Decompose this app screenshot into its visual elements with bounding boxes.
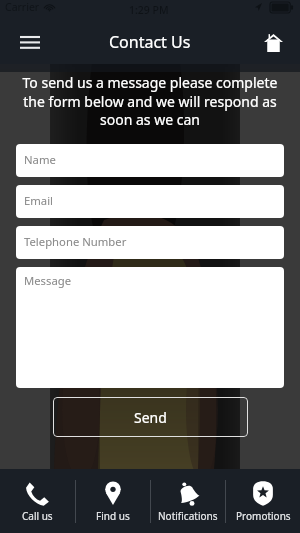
staticText: To send us a message please complete the…: [4, 73, 296, 129]
staticText: Email: [24, 193, 54, 208]
button[interactable]: Call us: [0, 469, 75, 533]
button[interactable]: Telephone Number: [16, 226, 284, 259]
staticText: Carrier: [5, 0, 40, 14]
button[interactable]: Home: [256, 25, 290, 59]
staticText: Promotions: [236, 509, 291, 523]
button[interactable]: Promotions: [226, 469, 300, 533]
button[interactable]: Find us: [76, 469, 150, 533]
button[interactable]: Email: [16, 185, 284, 218]
button[interactable]: Notifications: [151, 469, 225, 533]
staticText: Contact Us: [109, 31, 191, 53]
button[interactable]: Message: [16, 267, 284, 388]
staticText: Name: [24, 152, 56, 167]
staticText: Call us: [22, 509, 53, 523]
staticText: Telephone Number: [24, 234, 127, 249]
staticText: 1:29 PM: [129, 3, 169, 17]
staticText: Message: [24, 273, 72, 288]
staticText: Notifications: [158, 509, 218, 523]
button[interactable]: Send: [53, 397, 248, 437]
button[interactable]: Name: [16, 144, 284, 177]
button[interactable]: Menu: [10, 22, 50, 62]
staticText: Find us: [96, 509, 130, 523]
staticText: Send: [134, 408, 167, 427]
